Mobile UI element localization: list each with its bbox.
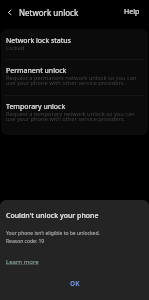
- button[interactable]: Permanent unlock: [0, 64, 149, 94]
- button[interactable]: OK: [0, 276, 149, 292]
- button[interactable]: Back: [1, 3, 18, 20]
- button[interactable]: Network lock status: [0, 34, 149, 56]
- button[interactable]: Learn more: [6, 258, 39, 266]
- staticText: Locked: [6, 44, 25, 51]
- staticText: Temporary unlock: [6, 102, 66, 112]
- staticText: OK: [70, 279, 80, 288]
- button[interactable]: Temporary unlock: [0, 100, 149, 130]
- staticText: Network unlock: [19, 7, 79, 18]
- staticText: Request a permanent network unlock so yo…: [6, 74, 137, 87]
- staticText: Request a temporary network unlock so yo…: [6, 110, 137, 123]
- staticText: Help: [124, 7, 140, 17]
- staticText: Permanent unlock: [6, 66, 67, 76]
- staticText: Network lock status: [6, 36, 71, 46]
- staticText: Learn more: [6, 258, 39, 266]
- staticText: Your phone isn't eligible to be unlocked…: [6, 230, 106, 245]
- button[interactable]: Help: [118, 1, 146, 23]
- staticText: Couldn't unlock your phone: [6, 211, 99, 221]
